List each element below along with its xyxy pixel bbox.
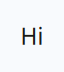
staticText: Hi (20, 21, 43, 51)
